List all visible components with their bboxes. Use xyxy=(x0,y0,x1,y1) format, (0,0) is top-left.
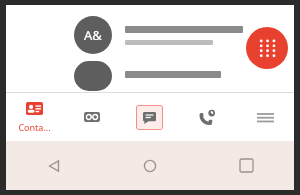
button[interactable]: Back xyxy=(6,141,102,190)
button[interactable]: Recent apps xyxy=(198,141,294,190)
staticText: A& xyxy=(84,26,102,44)
button[interactable]: More options xyxy=(236,93,294,141)
button[interactable]: A& xyxy=(6,12,294,58)
button[interactable]: Recents xyxy=(178,93,236,141)
button[interactable]: Messages xyxy=(120,93,178,141)
staticText: Conta... xyxy=(18,121,51,133)
button[interactable] xyxy=(6,61,294,91)
button[interactable]: Conta... xyxy=(6,93,63,141)
button[interactable]: Dialpad xyxy=(246,27,288,69)
button[interactable]: Home xyxy=(102,141,198,190)
button[interactable]: Voicemail xyxy=(63,93,120,141)
